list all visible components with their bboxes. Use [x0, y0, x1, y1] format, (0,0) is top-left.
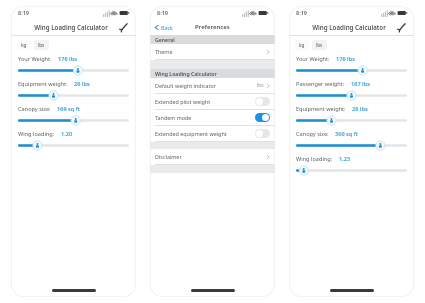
button[interactable]: On	[255, 113, 270, 122]
staticText: Wing Loading Calculator	[303, 23, 395, 31]
button[interactable]: Slider	[296, 115, 407, 126]
staticText: 26 lbs	[352, 105, 368, 113]
staticText: 176 lbs	[336, 55, 355, 63]
staticText: Extended pilot weight	[155, 98, 255, 105]
staticText: 1.23	[339, 155, 351, 163]
staticText: Preferences	[195, 23, 230, 31]
staticText: General	[155, 36, 175, 43]
button[interactable]: Theme	[150, 44, 275, 60]
button[interactable]: Disclaimer	[150, 149, 275, 165]
button[interactable]: Slider	[18, 115, 129, 126]
staticText: Equipment weight:	[296, 105, 346, 113]
button[interactable]: Slider	[296, 165, 407, 176]
staticText: Extended equipment weight	[155, 130, 255, 137]
staticText: Passenger weight:	[296, 80, 345, 88]
staticText: 8:19	[18, 9, 29, 16]
button[interactable]: kg	[17, 40, 31, 50]
button[interactable]: Slider	[18, 65, 129, 76]
button[interactable]: Tandem mode	[150, 110, 275, 126]
staticText: 300 sq ft	[335, 130, 359, 138]
staticText: Wing Loading Calculator	[25, 23, 117, 31]
staticText: lbs	[38, 42, 45, 48]
button[interactable]: Settings	[117, 21, 130, 34]
staticText: lbs	[316, 42, 323, 48]
staticText: 8:19	[157, 9, 168, 16]
staticText: 1.20	[61, 130, 73, 138]
button[interactable]: Back	[150, 22, 177, 33]
staticText: 169 sq ft	[57, 105, 81, 113]
button[interactable]: Extended pilot weight	[150, 94, 275, 110]
staticText: Wing loading:	[18, 130, 55, 138]
button[interactable]: Slider	[18, 90, 129, 101]
button[interactable]: lbs	[312, 40, 327, 50]
button[interactable]: Settings	[395, 21, 408, 34]
staticText: Canopy size:	[18, 105, 51, 113]
button[interactable]: Slider	[296, 90, 407, 101]
button[interactable]: Slider	[296, 140, 407, 151]
staticText: 176 lbs	[58, 55, 77, 63]
staticText: Wing loading:	[296, 155, 333, 163]
staticText: Disclaimer	[155, 153, 266, 160]
staticText: Your Weight:	[296, 55, 330, 63]
staticText: lbs	[257, 82, 264, 89]
staticText: 167 lbs	[351, 80, 370, 88]
staticText: Theme	[155, 48, 266, 55]
staticText: 8:19	[296, 9, 307, 16]
staticText: kg	[21, 42, 27, 48]
button[interactable]: Slider	[18, 140, 129, 151]
staticText: Back	[161, 24, 173, 31]
button[interactable]: Off	[255, 97, 270, 106]
button[interactable]: lbs	[34, 40, 49, 50]
button[interactable]: Off	[255, 129, 270, 138]
staticText: Wing Loading Calculator	[155, 70, 217, 77]
staticText: Default weight indicator	[155, 82, 257, 89]
button[interactable]: Extended equipment weight	[150, 126, 275, 142]
staticText: kg	[299, 42, 305, 48]
button[interactable]: Slider	[296, 65, 407, 76]
staticText: Tandem mode	[155, 114, 255, 121]
button[interactable]: kg	[295, 40, 309, 50]
button[interactable]: Default weight indicator	[150, 78, 275, 94]
staticText: Equipment weight:	[18, 80, 68, 88]
staticText: 26 lbs	[74, 80, 90, 88]
staticText: Your Weight:	[18, 55, 52, 63]
staticText: Canopy size:	[296, 130, 329, 138]
